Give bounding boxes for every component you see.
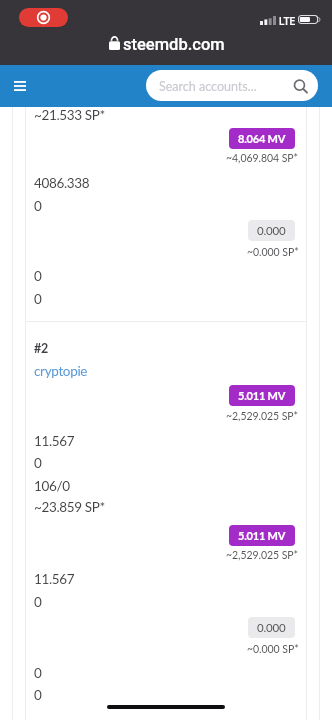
button[interactable]: 0 — [34, 455, 42, 471]
staticText: Search accounts... — [159, 79, 257, 94]
button[interactable]: 11.567 — [34, 571, 75, 587]
staticText: 5.011 MV — [238, 389, 286, 402]
button[interactable]: 0.000 — [248, 220, 295, 241]
staticText: steemdb.com — [123, 35, 225, 54]
staticText: #2 — [34, 341, 48, 356]
staticText: 0 — [34, 594, 42, 610]
button[interactable]: Screen recording active — [19, 8, 68, 27]
staticText: 0.000 — [257, 621, 286, 635]
button[interactable]: 4086.338 — [34, 175, 90, 191]
staticText: ~0.000 SP* — [247, 643, 299, 656]
staticText: 8.064 MV — [238, 132, 286, 145]
staticText: ~0.000 SP* — [247, 246, 299, 259]
button[interactable]: 5.011 MV — [229, 385, 295, 406]
staticText: ~2,529.025 SP* — [226, 549, 299, 562]
staticText: LTE — [279, 16, 296, 28]
button[interactable]: cryptopie — [34, 363, 88, 379]
staticText: ~4,069.804 SP* — [226, 152, 299, 165]
staticText: 106/0 — [34, 478, 70, 494]
button[interactable]: #2 — [34, 341, 48, 356]
button[interactable]: 8.064 MV — [229, 128, 295, 149]
staticText: 0 — [34, 665, 42, 681]
staticText: 0 — [34, 291, 42, 307]
staticText: 0 — [34, 455, 42, 471]
staticText: cryptopie — [34, 363, 88, 379]
button[interactable]: 0 — [34, 594, 42, 610]
button[interactable]: 0 — [34, 687, 42, 703]
staticText: 11.567 — [34, 571, 75, 587]
button[interactable]: 0 — [34, 291, 42, 307]
button[interactable]: Search accounts... — [146, 70, 318, 101]
staticText: ~2,529.025 SP* — [226, 410, 299, 423]
staticText: 5.011 MV — [238, 529, 286, 542]
button[interactable]: 0.000 — [248, 617, 295, 638]
staticText: ~23.859 SP* — [34, 499, 105, 515]
staticText: 0.000 — [257, 224, 286, 238]
staticText: 4086.338 — [34, 175, 90, 191]
button[interactable]: 106/0 — [34, 478, 70, 494]
button[interactable]: 11.567 — [34, 433, 75, 449]
staticText: 0 — [34, 687, 42, 703]
staticText: 0 — [34, 198, 42, 214]
button[interactable]: 0 — [34, 198, 42, 214]
button[interactable]: ~21.533 SP* — [34, 107, 105, 123]
button[interactable]: 5.011 MV — [229, 525, 295, 546]
button[interactable]: Open navigation menu — [0, 65, 39, 107]
button[interactable]: 0 — [34, 268, 42, 284]
button[interactable]: 0 — [34, 665, 42, 681]
staticText: 0 — [34, 268, 42, 284]
button[interactable]: ~23.859 SP* — [34, 499, 105, 515]
staticText: 11.567 — [34, 433, 75, 449]
staticText: ~21.533 SP* — [34, 107, 105, 123]
